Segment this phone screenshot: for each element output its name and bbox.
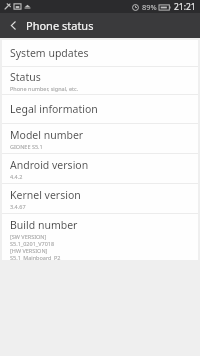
staticText: 4.4.2 — [10, 173, 23, 180]
staticText: Model number — [10, 128, 84, 142]
button[interactable]: Status — [2, 67, 198, 94]
staticText: Android version — [10, 158, 89, 172]
staticText: GIONEE S5.1 — [10, 143, 43, 150]
button[interactable]: Legal information — [2, 95, 198, 123]
staticText: S5.1_Mainboard_P2 — [10, 254, 61, 260]
staticText: Phone number, signal, etc. — [10, 85, 79, 92]
staticText: Phone status — [26, 18, 94, 33]
staticText: [SW VERSION] — [10, 233, 47, 240]
staticText: 3.4.67 — [10, 203, 26, 210]
staticText: 21:21 — [174, 1, 196, 13]
button[interactable]: Build number — [2, 214, 198, 260]
button[interactable]: System updates — [2, 40, 198, 66]
button[interactable]: Back — [0, 13, 26, 38]
staticText: 89% — [142, 2, 157, 12]
button[interactable]: Android version — [2, 154, 198, 183]
staticText: Status — [10, 70, 41, 84]
staticText: S5.1_0201_V7018 — [10, 240, 55, 247]
button[interactable]: Model number — [2, 124, 198, 153]
staticText: Kernel version — [10, 188, 81, 202]
staticText: Build number — [10, 218, 78, 232]
staticText: Legal information — [10, 102, 98, 116]
staticText: [HW VERSION] — [10, 247, 48, 254]
button[interactable]: Kernel version — [2, 184, 198, 213]
staticText: System updates — [10, 46, 89, 60]
